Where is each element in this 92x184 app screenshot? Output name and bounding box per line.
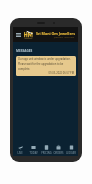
staticText: PRICING [41, 151, 52, 155]
button[interactable]: LIVE RATES [14, 145, 26, 156]
button[interactable]: Open navigation menu [15, 30, 22, 39]
staticText: Our app unit window is under upgradation… [18, 57, 74, 70]
staticText: LEDGER [66, 151, 76, 155]
staticText: TODAY [29, 151, 38, 155]
staticText: 09-05-2022 06:57 PM [18, 71, 74, 75]
staticText: Jewellery Merchant [54, 36, 75, 39]
staticText: MESSAGES [16, 49, 33, 53]
staticText: ORDERS [53, 151, 64, 155]
button[interactable]: PRICING [40, 145, 52, 156]
staticText: Sri Mani Om Jewellers [36, 31, 75, 36]
button[interactable]: TODAY [27, 145, 39, 156]
button[interactable]: ORDERS [52, 145, 64, 156]
staticText: LIVE RATES [14, 151, 26, 155]
button[interactable]: LEDGER [65, 145, 77, 156]
